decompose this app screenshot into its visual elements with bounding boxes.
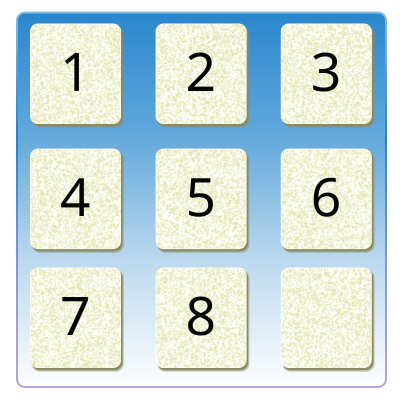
staticText: 4	[60, 160, 91, 231]
button[interactable]: Tile 2	[156, 23, 247, 124]
staticText: 8	[186, 279, 217, 350]
button[interactable]: Tile 1	[30, 23, 121, 124]
staticText: 7	[60, 279, 91, 350]
staticText: 5	[186, 160, 217, 231]
button[interactable]: Empty slot	[281, 267, 372, 368]
staticText: 6	[311, 160, 342, 231]
button[interactable]: Tile 8	[156, 267, 247, 368]
staticText: 1	[60, 35, 91, 106]
button[interactable]: Tile 4	[30, 149, 121, 249]
staticText: 2	[186, 35, 217, 106]
button[interactable]: Tile 5	[156, 149, 247, 249]
staticText: 3	[311, 35, 342, 106]
button[interactable]: Tile 6	[281, 149, 372, 249]
button[interactable]: Tile 3	[281, 23, 372, 124]
button[interactable]: Tile 7	[30, 267, 121, 368]
